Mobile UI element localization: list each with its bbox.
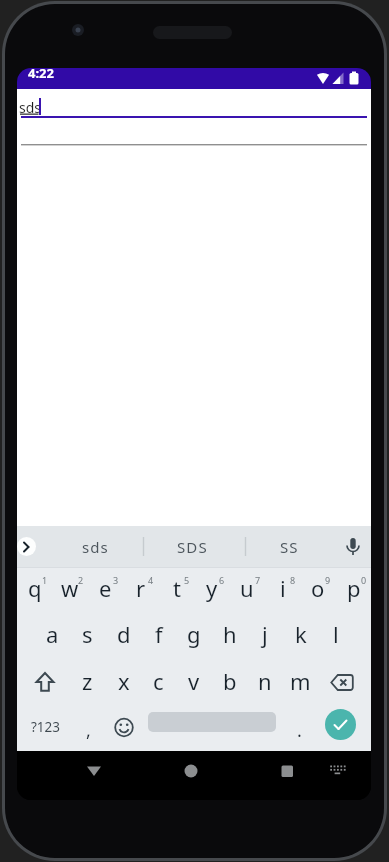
button[interactable]: g xyxy=(176,611,211,657)
staticText: 0 xyxy=(361,574,367,586)
staticText: g xyxy=(187,619,201,649)
staticText: l xyxy=(333,619,339,649)
button[interactable]: f xyxy=(141,611,176,657)
button[interactable] xyxy=(171,751,211,791)
staticText: a xyxy=(46,619,59,649)
button[interactable]: ?123 xyxy=(20,705,72,749)
button[interactable]: k xyxy=(283,611,318,657)
button[interactable] xyxy=(17,124,371,148)
staticText: k xyxy=(295,619,307,649)
staticText: SS xyxy=(280,537,299,557)
button[interactable] xyxy=(323,757,351,785)
staticText: d xyxy=(117,619,131,649)
button[interactable]: i xyxy=(265,565,300,611)
staticText: 9 xyxy=(325,574,331,586)
staticText: 1 xyxy=(42,574,48,586)
button[interactable]: r xyxy=(123,565,158,611)
staticText: j xyxy=(262,619,268,649)
staticText: sds xyxy=(82,537,109,557)
button[interactable]: q xyxy=(17,565,52,611)
staticText: z xyxy=(82,666,93,696)
staticText: q xyxy=(28,573,42,603)
button[interactable]: l xyxy=(318,611,353,657)
button[interactable] xyxy=(107,705,141,749)
button[interactable]: c xyxy=(141,658,176,704)
staticText: u xyxy=(240,573,254,603)
button[interactable]: SDS xyxy=(149,530,235,564)
staticText: f xyxy=(155,619,163,649)
staticText: v xyxy=(188,666,200,696)
button[interactable]: a xyxy=(35,611,70,657)
button[interactable]: j xyxy=(247,611,282,657)
button[interactable]: d xyxy=(106,611,141,657)
staticText: 3 xyxy=(113,574,119,586)
staticText: ?123 xyxy=(31,718,61,736)
button[interactable]: w xyxy=(52,565,87,611)
button[interactable] xyxy=(319,658,365,704)
staticText: 8 xyxy=(290,574,296,586)
staticText: p xyxy=(347,573,361,603)
staticText: . xyxy=(297,718,302,743)
staticText: e xyxy=(99,573,112,603)
button[interactable] xyxy=(17,89,371,119)
staticText: sds xyxy=(19,98,42,117)
staticText: 7 xyxy=(255,574,261,586)
button[interactable] xyxy=(267,751,307,791)
button[interactable]: sds xyxy=(52,530,138,564)
staticText: h xyxy=(223,619,237,649)
button[interactable]: o xyxy=(300,565,335,611)
button[interactable] xyxy=(325,709,356,740)
button[interactable]: SS xyxy=(246,530,332,564)
staticText: i xyxy=(280,573,286,603)
button[interactable]: e xyxy=(88,565,123,611)
staticText: x xyxy=(118,666,130,696)
button[interactable] xyxy=(74,751,114,791)
button[interactable]: u xyxy=(229,565,264,611)
button[interactable]: v xyxy=(176,658,211,704)
button[interactable]: . xyxy=(282,708,316,752)
button[interactable]: z xyxy=(70,658,105,704)
button[interactable]: b xyxy=(212,658,247,704)
staticText: SDS xyxy=(177,537,208,557)
button[interactable]: t xyxy=(159,565,194,611)
button[interactable]: h xyxy=(212,611,247,657)
button[interactable]: n xyxy=(247,658,282,704)
button[interactable]: s xyxy=(70,611,105,657)
button[interactable]: m xyxy=(283,658,318,704)
staticText: b xyxy=(223,666,237,696)
staticText: y xyxy=(206,573,218,603)
staticText: c xyxy=(153,666,164,696)
button[interactable] xyxy=(17,537,36,556)
button[interactable]: y xyxy=(194,565,229,611)
staticText: s xyxy=(82,619,93,649)
staticText: r xyxy=(136,573,146,603)
staticText: 4 xyxy=(148,574,154,586)
button[interactable]: p xyxy=(336,565,371,611)
staticText: 2 xyxy=(78,574,84,586)
staticText: n xyxy=(258,666,272,696)
button[interactable]: , xyxy=(71,708,105,752)
button[interactable]: x xyxy=(106,658,141,704)
staticText: m xyxy=(290,666,311,696)
staticText: 5 xyxy=(184,574,190,586)
staticText: , xyxy=(86,718,91,743)
staticText: t xyxy=(173,573,181,603)
staticText: 6 xyxy=(219,574,225,586)
staticText: o xyxy=(311,573,325,603)
staticText: 4:22 xyxy=(28,68,54,82)
staticText: w xyxy=(61,573,79,603)
button[interactable] xyxy=(23,658,70,704)
